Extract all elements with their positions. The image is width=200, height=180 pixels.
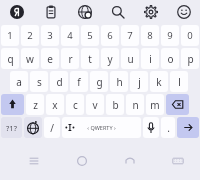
staticText: k	[156, 75, 162, 89]
staticText: p	[187, 52, 194, 66]
button[interactable]: 6	[101, 25, 119, 46]
button[interactable]: q	[1, 48, 19, 69]
button[interactable]: f	[70, 71, 88, 92]
staticText: l	[178, 75, 181, 89]
button[interactable]: 0	[181, 25, 199, 46]
button[interactable]: d	[50, 71, 68, 92]
button[interactable]: l	[170, 71, 188, 92]
staticText: y	[107, 52, 113, 66]
button[interactable]: k	[150, 71, 168, 92]
staticText: z	[33, 98, 38, 112]
button[interactable]: Yandex	[0, 0, 34, 23]
button[interactable]: /	[44, 117, 60, 138]
staticText: ?1?	[6, 123, 17, 133]
staticText: 3	[47, 29, 53, 42]
staticText: f	[77, 75, 81, 89]
staticText: 6	[107, 29, 113, 42]
staticText: 5	[87, 29, 93, 42]
button[interactable]: m	[146, 94, 164, 115]
staticText: c	[73, 98, 78, 112]
button[interactable]: 8	[141, 25, 159, 46]
staticText: v	[92, 98, 98, 112]
staticText: 4	[67, 29, 73, 42]
button[interactable]: t	[81, 48, 99, 69]
button[interactable]: s	[30, 71, 48, 92]
button[interactable]: Home	[72, 151, 92, 171]
button[interactable]: 4	[61, 25, 79, 46]
staticText: 9	[167, 29, 173, 42]
button[interactable]: Search	[101, 0, 134, 23]
button[interactable]: Translate	[68, 0, 101, 23]
button[interactable]: r	[61, 48, 79, 69]
button[interactable]: 7	[121, 25, 139, 46]
staticText: b	[112, 98, 119, 112]
staticText: i	[149, 52, 152, 66]
button[interactable]: v	[86, 94, 104, 115]
staticText: q	[7, 52, 14, 66]
button[interactable]: 9	[161, 25, 179, 46]
button[interactable]: a	[10, 71, 28, 92]
staticText: e	[47, 52, 53, 66]
staticText: 2	[27, 29, 33, 42]
button[interactable]: Clipboard	[34, 0, 68, 23]
button[interactable]: n	[126, 94, 144, 115]
staticText: h	[116, 75, 123, 89]
staticText: o	[167, 52, 174, 66]
button[interactable]: .	[161, 117, 175, 138]
staticText: t	[88, 52, 92, 66]
button[interactable]: Recents	[24, 151, 44, 171]
staticText: u	[127, 52, 134, 66]
button[interactable]: Backspace	[166, 94, 189, 115]
button[interactable]: ‹ QWERTY ›	[62, 117, 141, 138]
button[interactable]: i	[141, 48, 159, 69]
staticText: s	[37, 75, 42, 89]
staticText: d	[56, 75, 63, 89]
staticText: r	[68, 52, 73, 66]
staticText: 7	[127, 29, 133, 42]
button[interactable]: Back	[120, 151, 140, 171]
button[interactable]: Settings	[134, 0, 167, 23]
button[interactable]: Shift	[1, 94, 24, 115]
staticText: m	[150, 98, 160, 112]
staticText: a	[16, 75, 22, 89]
button[interactable]: u	[121, 48, 139, 69]
button[interactable]: b	[106, 94, 124, 115]
staticText: n	[132, 98, 139, 112]
button[interactable]: c	[66, 94, 84, 115]
staticText: 1	[7, 29, 13, 42]
button[interactable]: w	[21, 48, 39, 69]
button[interactable]: Change language	[24, 117, 42, 138]
button[interactable]: z	[26, 94, 44, 115]
button[interactable]: p	[181, 48, 199, 69]
button[interactable]: h	[110, 71, 128, 92]
button[interactable]: ?1?	[1, 117, 22, 138]
button[interactable]: 2	[21, 25, 39, 46]
button[interactable]: o	[161, 48, 179, 69]
button[interactable]: e	[41, 48, 59, 69]
staticText: j	[138, 75, 141, 89]
staticText: .	[167, 121, 170, 135]
button[interactable]: y	[101, 48, 119, 69]
button[interactable]: 1	[1, 25, 19, 46]
button[interactable]: Enter	[177, 117, 199, 138]
button[interactable]: x	[46, 94, 64, 115]
button[interactable]: 5	[81, 25, 99, 46]
staticText: ‹ QWERTY ›	[87, 124, 116, 131]
staticText: /	[50, 121, 54, 135]
button[interactable]: Hide keyboard	[168, 151, 188, 171]
button[interactable]: Emoji	[167, 0, 200, 23]
button[interactable]: Voice input	[143, 117, 159, 138]
button[interactable]: j	[130, 71, 148, 92]
staticText: x	[52, 98, 58, 112]
staticText: g	[96, 75, 103, 89]
staticText: 8	[147, 29, 153, 42]
staticText: 0	[187, 29, 193, 42]
button[interactable]: g	[90, 71, 108, 92]
button[interactable]: 3	[41, 25, 59, 46]
staticText: w	[26, 52, 34, 66]
